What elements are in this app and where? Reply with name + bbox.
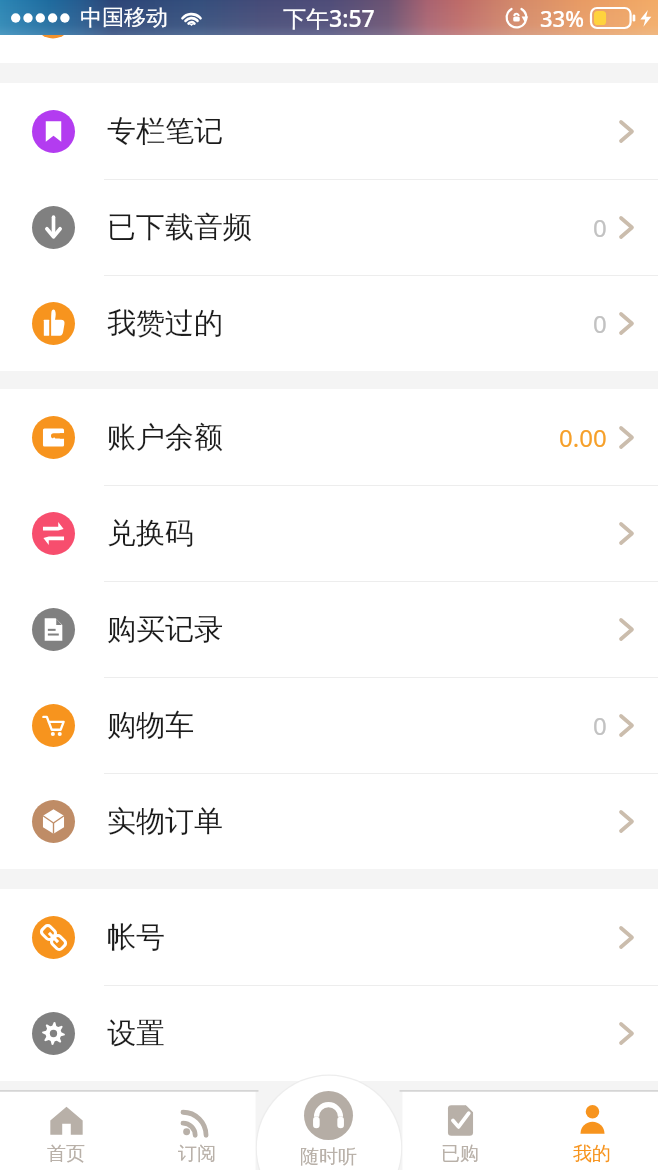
button[interactable]: 实物订单 [0,773,658,869]
staticText: 0.00 [559,421,607,454]
staticText: 专栏笔记 [107,113,223,150]
button[interactable]: 首页 [0,1075,131,1170]
staticText: 0 [593,709,607,742]
staticText: 已购 [441,1142,479,1166]
staticText: 我的 [573,1142,611,1166]
button[interactable]: 账户余额 [0,389,658,485]
staticText: 购物车 [107,707,194,744]
staticText: 订阅 [178,1142,216,1166]
button[interactable]: 随时听 [262,1075,394,1170]
button[interactable]: 我的 [526,1075,658,1170]
button[interactable]: 专栏笔记 [0,83,658,179]
button[interactable]: 已下载音频 [0,179,658,275]
button[interactable]: 设置 [0,985,658,1081]
staticText: 33% [540,3,584,33]
button[interactable]: 购买记录 [0,581,658,677]
button[interactable]: 订阅 [131,1075,262,1170]
staticText: 购买记录 [107,611,223,648]
staticText: 下午3:57 [283,2,375,33]
staticText: 首页 [47,1142,85,1166]
button[interactable]: 购物车 [0,677,658,773]
staticText: 设置 [107,1015,165,1052]
button[interactable]: 帐号 [0,889,658,985]
staticText: 实物订单 [107,803,223,840]
staticText: 随时听 [300,1145,357,1169]
staticText: 中国移动 [80,4,168,32]
staticText: 兑换码 [107,515,194,552]
staticText: 帐号 [107,919,165,956]
staticText: 0 [593,307,607,340]
staticText: 我赞过的 [107,305,223,342]
staticText: 账户余额 [107,419,223,456]
button[interactable]: 兑换码 [0,485,658,581]
button[interactable]: 我赞过的 [0,275,658,371]
button[interactable]: 已购 [394,1075,526,1170]
staticText: 已下载音频 [107,209,252,246]
staticText: 0 [593,211,607,244]
